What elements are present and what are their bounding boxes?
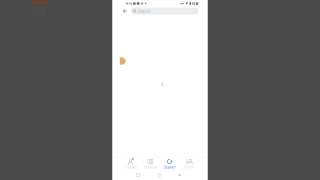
button[interactable]: Back <box>119 7 130 15</box>
staticText: Search <box>138 8 150 14</box>
staticText: Channels <box>144 166 157 169</box>
staticText: Contacts <box>125 166 136 169</box>
button[interactable]: Channels <box>141 157 160 170</box>
button[interactable]: Home <box>153 170 166 180</box>
button[interactable]: Contacts <box>121 157 141 170</box>
staticText: Discover <box>164 166 175 169</box>
button[interactable]: Profile <box>179 157 199 170</box>
button[interactable]: Discover <box>160 157 179 170</box>
button[interactable]: Search <box>130 8 198 14</box>
button[interactable]: Back <box>172 170 186 180</box>
button[interactable]: Recents <box>131 170 145 180</box>
staticText: Profile <box>184 166 194 169</box>
